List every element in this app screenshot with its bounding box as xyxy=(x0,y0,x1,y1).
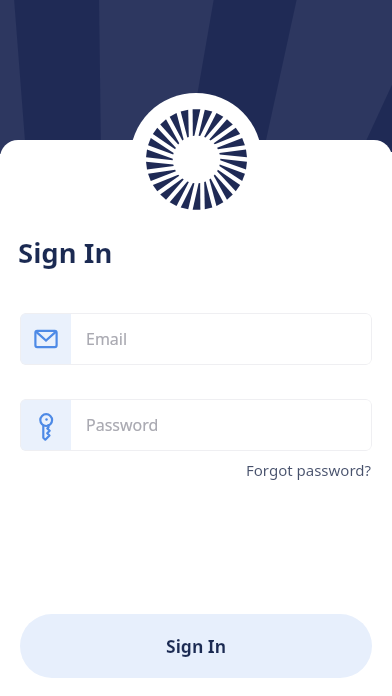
staticText: Forgot password? xyxy=(246,460,372,480)
other: Email xyxy=(20,313,71,365)
staticText: Email xyxy=(86,328,128,350)
button[interactable]: Forgot password? xyxy=(246,460,372,480)
other: Password xyxy=(20,399,71,451)
staticText: Sign In xyxy=(166,634,227,658)
staticText: Password xyxy=(86,414,159,436)
button[interactable]: Password xyxy=(20,399,372,451)
button[interactable]: Sign In xyxy=(20,614,372,678)
staticText: Sign In xyxy=(18,234,113,271)
button[interactable]: Email xyxy=(20,313,372,365)
